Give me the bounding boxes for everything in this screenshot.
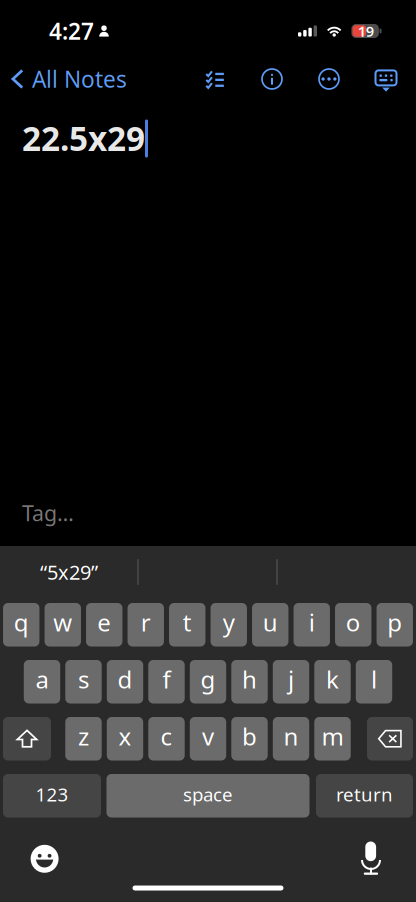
staticText: 123 [35,782,68,807]
button[interactable]: Delete [367,717,413,760]
staticText: w [53,606,72,638]
button[interactable]: b [231,717,268,760]
staticText: u [263,606,278,638]
staticText: d [117,663,132,695]
staticText: g [200,663,215,695]
button[interactable]: Checklist [193,56,237,100]
button[interactable]: q [3,603,39,646]
staticText: m [321,720,343,752]
button[interactable]: w [45,603,81,646]
button[interactable]: c [148,717,185,760]
button[interactable]: y [211,603,247,646]
staticText: 4:27 [49,16,94,46]
button[interactable]: return [316,774,413,817]
staticText: b [242,720,257,752]
button[interactable]: All Notes [0,57,135,101]
staticText: k [326,663,339,695]
staticText: n [283,720,298,752]
button[interactable]: d [107,660,143,703]
staticText: c [160,720,172,752]
button[interactable]: Emoji [24,838,66,880]
button[interactable]: m [314,717,351,760]
button[interactable]: p [377,603,413,646]
button[interactable]: a [24,660,60,703]
button[interactable]: j [273,660,309,703]
staticText: e [97,606,111,638]
staticText: 19 [358,21,374,41]
button[interactable]: n [273,717,309,760]
button[interactable]: Hide Keyboard [364,59,408,103]
staticText: a [35,663,48,695]
button[interactable]: Dictate [350,838,392,880]
button[interactable]: z [65,717,102,760]
staticText: p [387,606,402,638]
button[interactable]: u [252,603,288,646]
staticText: i [309,606,315,638]
staticText: return [336,782,393,807]
staticText: y [223,606,235,638]
staticText: z [78,720,89,752]
button[interactable]: space [106,774,309,817]
button[interactable]: k [314,660,351,703]
button[interactable]: x [107,717,143,760]
staticText: r [141,606,151,638]
staticText: Tag… [22,499,74,527]
staticText: x [118,720,131,752]
button[interactable]: 123 [3,774,101,817]
staticText: o [346,606,361,638]
staticText: s [78,663,89,695]
staticText: j [288,663,294,695]
staticText: l [371,663,377,695]
button[interactable]: i [294,603,330,646]
staticText: All Notes [32,64,127,94]
button[interactable]: t [169,603,205,646]
button[interactable]: o [335,603,371,646]
staticText: h [242,663,257,695]
button[interactable]: More [307,57,351,101]
staticText: f [162,663,170,695]
button[interactable]: v [190,717,226,760]
button[interactable]: g [190,660,226,703]
staticText: 22.5x29 [22,116,145,160]
button[interactable]: e [86,603,122,646]
staticText: “5x29” [40,559,98,585]
staticText: space [183,782,233,807]
button[interactable]: s [65,660,102,703]
staticText: q [14,606,29,638]
staticText: v [202,720,214,752]
button[interactable]: f [148,660,185,703]
button[interactable]: Info [250,57,294,101]
button[interactable]: h [231,660,268,703]
staticText: t [183,606,192,638]
button[interactable]: l [356,660,392,703]
button[interactable]: Shift [3,717,51,760]
button[interactable]: r [128,603,164,646]
